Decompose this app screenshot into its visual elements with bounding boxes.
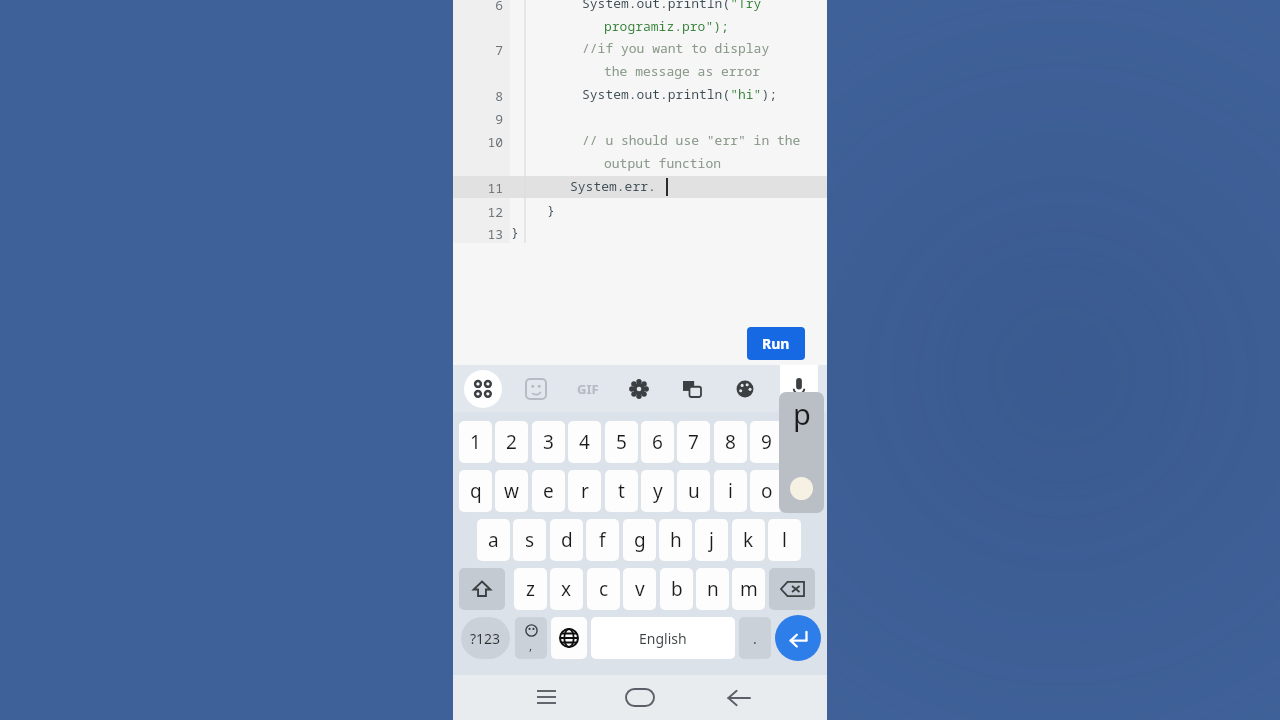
- staticText: s: [525, 527, 535, 553]
- button[interactable]: 9: [750, 421, 783, 463]
- button[interactable]: a: [477, 519, 510, 561]
- button[interactable]: z: [514, 568, 547, 610]
- button[interactable]: 4: [568, 421, 601, 463]
- staticText: 13: [453, 225, 503, 243]
- staticText: 11: [453, 179, 503, 197]
- button[interactable]: m: [732, 568, 765, 610]
- button[interactable]: h: [659, 519, 692, 561]
- staticText: 10: [453, 133, 503, 151]
- button[interactable]: b: [660, 568, 693, 610]
- button[interactable]: Toolbox: [464, 370, 502, 408]
- button[interactable]: 7: [677, 421, 710, 463]
- button[interactable]: r: [568, 470, 601, 512]
- button[interactable]: 6: [641, 421, 674, 463]
- staticText: 9: [761, 429, 772, 455]
- staticText: o: [761, 478, 773, 504]
- button[interactable]: 3: [532, 421, 565, 463]
- button[interactable]: Recent apps: [527, 678, 565, 716]
- button[interactable]: f: [586, 519, 619, 561]
- staticText: English: [639, 629, 687, 648]
- staticText: the message as error: [604, 62, 761, 80]
- button[interactable]: y: [641, 470, 674, 512]
- button[interactable]: s: [513, 519, 546, 561]
- staticText: System.out.println("Try: [582, 0, 762, 12]
- staticText: p: [793, 394, 811, 433]
- staticText: 6: [453, 0, 503, 14]
- button[interactable]: t: [605, 470, 638, 512]
- staticText: a: [488, 527, 499, 553]
- button[interactable]: e: [532, 470, 565, 512]
- staticText: 8: [725, 429, 736, 455]
- staticText: x: [561, 576, 572, 602]
- staticText: n: [707, 576, 719, 602]
- staticText: w: [504, 478, 519, 504]
- button[interactable]: 2: [495, 421, 528, 463]
- staticText: 7: [453, 41, 503, 59]
- staticText: 7: [688, 429, 699, 455]
- button[interactable]: Emoji and comma: [515, 617, 547, 659]
- button[interactable]: w: [495, 470, 528, 512]
- button[interactable]: o: [750, 470, 783, 512]
- button[interactable]: 0: [787, 421, 820, 463]
- button[interactable]: Shift: [459, 568, 505, 610]
- button[interactable]: Backspace: [769, 568, 815, 610]
- button[interactable]: Home: [621, 678, 659, 716]
- button[interactable]: p: [787, 470, 820, 512]
- button[interactable]: u: [677, 470, 710, 512]
- button[interactable]: Run: [747, 327, 805, 360]
- button[interactable]: Voice input: [780, 365, 818, 412]
- staticText: ,: [529, 637, 533, 653]
- staticText: u: [688, 478, 700, 504]
- staticText: .: [753, 629, 757, 648]
- button[interactable]: .: [739, 617, 771, 659]
- staticText: System.err.: [570, 177, 656, 195]
- staticText: programiz.pro");: [604, 17, 729, 35]
- button[interactable]: x: [550, 568, 583, 610]
- staticText: 6: [652, 429, 663, 455]
- staticText: // u should use "err" in the: [582, 131, 801, 149]
- button[interactable]: g: [623, 519, 656, 561]
- staticText: v: [635, 576, 645, 602]
- button[interactable]: Translate: [673, 370, 711, 408]
- button[interactable]: Enter: [775, 615, 821, 661]
- button[interactable]: ?123: [461, 617, 510, 659]
- button[interactable]: n: [696, 568, 729, 610]
- staticText: 4: [579, 429, 590, 455]
- button[interactable]: 1: [459, 421, 492, 463]
- staticText: r: [581, 478, 589, 504]
- button[interactable]: Change language: [551, 617, 587, 659]
- staticText: }: [511, 223, 519, 241]
- staticText: 12: [453, 203, 503, 221]
- button[interactable]: q: [459, 470, 492, 512]
- button[interactable]: v: [623, 568, 656, 610]
- button[interactable]: k: [732, 519, 765, 561]
- button[interactable]: 8: [714, 421, 747, 463]
- staticText: e: [543, 478, 554, 504]
- staticText: q: [470, 478, 482, 504]
- staticText: f: [599, 527, 606, 553]
- button[interactable]: English: [591, 617, 735, 659]
- button[interactable]: GIF: [567, 370, 609, 408]
- button[interactable]: j: [695, 519, 728, 561]
- staticText: output function: [604, 154, 722, 172]
- button[interactable]: Settings: [620, 370, 658, 408]
- staticText: t: [618, 478, 625, 504]
- staticText: 1: [470, 429, 481, 455]
- staticText: b: [671, 576, 683, 602]
- staticText: ?123: [470, 629, 501, 648]
- button[interactable]: c: [587, 568, 620, 610]
- staticText: }: [547, 201, 555, 219]
- button[interactable]: l: [768, 519, 801, 561]
- staticText: y: [653, 478, 663, 504]
- button[interactable]: i: [714, 470, 747, 512]
- button[interactable]: 5: [605, 421, 638, 463]
- staticText: p: [798, 478, 810, 504]
- staticText: Run: [762, 334, 790, 353]
- staticText: 8: [453, 87, 503, 105]
- button[interactable]: d: [550, 519, 583, 561]
- staticText: z: [526, 576, 535, 602]
- button[interactable]: Back: [719, 678, 757, 716]
- button[interactable]: Theme: [726, 370, 764, 408]
- button[interactable]: Stickers: [517, 370, 555, 408]
